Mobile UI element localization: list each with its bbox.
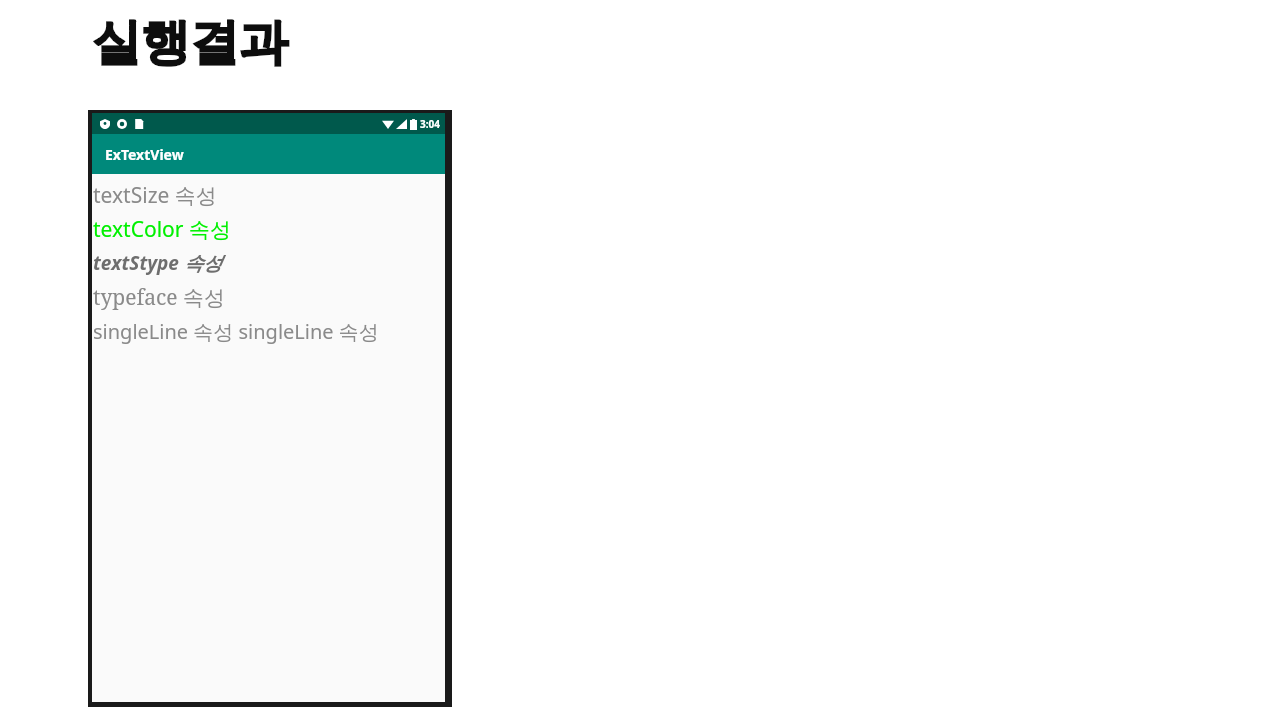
staticText: textColor 속성 bbox=[93, 215, 231, 244]
button[interactable]: typeface 속성 bbox=[93, 280, 445, 314]
staticText: singleLine 속성 singleLine 속성 bbox=[93, 318, 379, 345]
staticText: typeface 속성 bbox=[93, 283, 225, 312]
staticText: 3:04 bbox=[420, 117, 440, 131]
staticText: textSize 속성 bbox=[93, 181, 217, 210]
button[interactable]: singleLine 속성 singleLine 속성 bbox=[93, 314, 445, 348]
staticText: textStype 속성 bbox=[93, 250, 222, 276]
button[interactable]: ExTextView bbox=[92, 134, 445, 174]
staticText: ExTextView bbox=[105, 145, 184, 164]
button[interactable]: textSize 속성 bbox=[93, 178, 445, 212]
button[interactable]: textStype 속성 bbox=[93, 246, 445, 280]
button[interactable]: textColor 속성 bbox=[93, 212, 445, 246]
staticText: 실행결과 bbox=[92, 12, 288, 74]
